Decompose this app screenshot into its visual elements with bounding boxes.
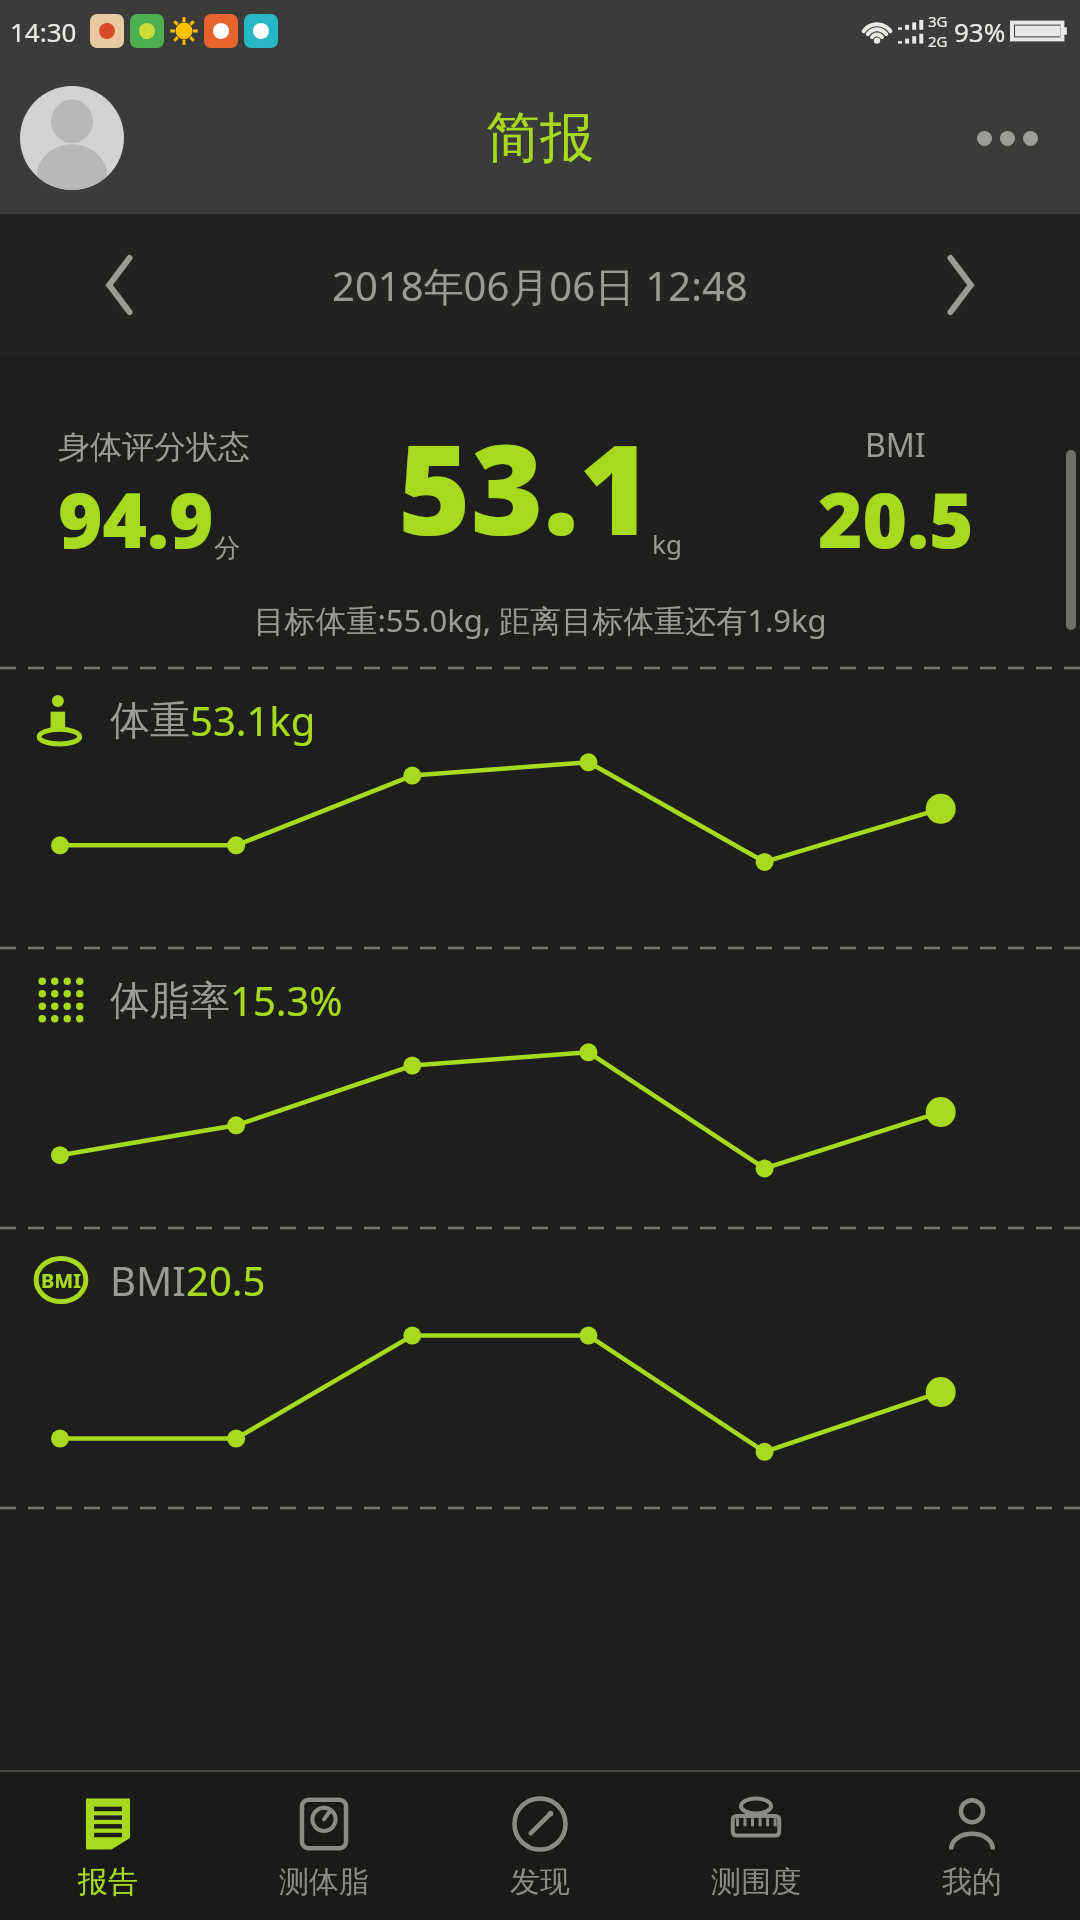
staticText: 身体评分状态 [58, 427, 250, 467]
button[interactable]: More options [965, 123, 1050, 154]
staticText: 53.1kg [190, 693, 316, 747]
staticText: 发现 [510, 1863, 570, 1901]
staticText: 2018年06月06日 12:48 [332, 258, 748, 313]
staticText: 53.1 [398, 402, 652, 571]
staticText: 3G [928, 11, 948, 31]
staticText: 20.5 [818, 467, 974, 571]
staticText: 94.9 [58, 467, 214, 571]
staticText: 测体脂 [279, 1863, 369, 1901]
staticText: 2G [928, 31, 948, 51]
staticText: 分 [214, 532, 240, 565]
button[interactable]: 报告 [0, 1772, 216, 1920]
button[interactable]: Next [920, 245, 1000, 325]
button[interactable]: 测围度 [648, 1772, 864, 1920]
staticText: 简报 [486, 104, 594, 172]
staticText: 报告 [78, 1863, 138, 1901]
staticText: 测围度 [711, 1863, 801, 1901]
staticText: 14:30 [10, 14, 77, 49]
button[interactable]: Previous [80, 245, 160, 325]
button[interactable]: 体脂率 [0, 949, 1080, 1227]
staticText: 93% [954, 14, 1006, 49]
staticText: BMI [110, 1253, 186, 1307]
staticText: kg [652, 526, 682, 561]
staticText: 体脂率 [110, 975, 230, 1025]
staticText: 我的 [942, 1863, 1002, 1901]
button[interactable]: Profile [20, 86, 124, 190]
staticText: 体重 [110, 695, 190, 745]
button[interactable]: BMI [0, 1229, 1080, 1507]
button[interactable]: 体重 [0, 669, 1080, 947]
button[interactable]: 我的 [864, 1772, 1080, 1920]
button[interactable]: 发现 [432, 1772, 648, 1920]
staticText: 20.5 [186, 1253, 266, 1307]
staticText: 15.3% [230, 973, 343, 1027]
staticText: BMI [865, 423, 926, 467]
button[interactable]: 测体脂 [216, 1772, 432, 1920]
staticText: 目标体重:55.0kg, 距离目标体重还有1.9kg [0, 599, 1080, 641]
staticText: BMI [41, 1267, 81, 1294]
